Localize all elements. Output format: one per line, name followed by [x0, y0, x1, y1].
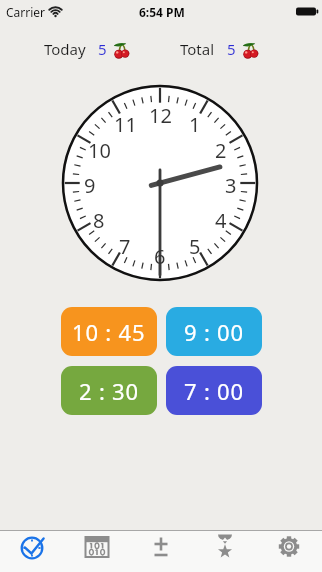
staticText: 12 — [149, 102, 172, 124]
staticText: 10 : 45 — [72, 317, 146, 347]
staticText: 7 : 00 — [184, 376, 244, 406]
staticText: Today — [44, 39, 86, 59]
staticText: 5 — [98, 39, 107, 59]
staticText: 10 — [88, 137, 111, 159]
button[interactable] — [2, 530, 62, 572]
staticText: 1 — [189, 111, 201, 133]
button[interactable] — [131, 530, 191, 572]
button[interactable] — [260, 530, 320, 572]
staticText: 2 — [215, 137, 227, 159]
staticText: 9 — [84, 172, 96, 194]
staticText: 7 — [119, 233, 131, 255]
button[interactable]: Today — [44, 39, 131, 59]
button[interactable]: 9 : 00 — [166, 307, 262, 356]
staticText: 6 — [154, 243, 166, 265]
button[interactable] — [195, 530, 255, 572]
staticText: 4 — [215, 207, 227, 229]
staticText: 5 — [227, 39, 236, 59]
staticText: 11 — [114, 111, 137, 133]
staticText: Carrier — [6, 4, 46, 20]
staticText: 9 : 00 — [184, 317, 244, 347]
button[interactable]: 10 : 45 — [61, 307, 157, 356]
button[interactable]: 7 : 00 — [166, 366, 262, 415]
button[interactable]: Total — [180, 39, 260, 59]
staticText: 2 : 30 — [79, 376, 139, 406]
staticText: Total — [180, 39, 215, 59]
staticText: 8 — [93, 207, 105, 229]
staticText: 3 — [225, 172, 237, 194]
staticText: 6:54 PM — [139, 4, 185, 20]
staticText: 5 — [189, 233, 201, 255]
button[interactable]: 2 : 30 — [61, 366, 157, 415]
button[interactable] — [67, 530, 127, 572]
